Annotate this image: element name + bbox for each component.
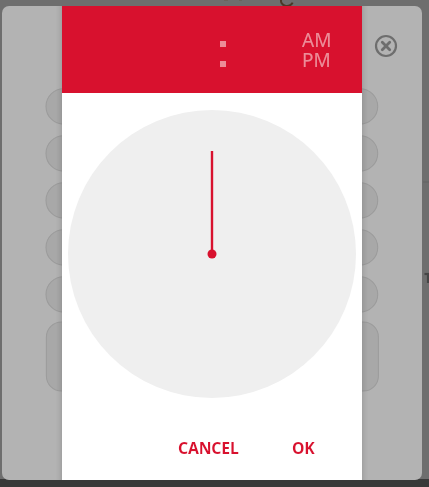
staticText: PM [302, 47, 331, 71]
staticText: OK [292, 437, 315, 459]
button[interactable]: OK [292, 431, 315, 465]
button[interactable]: CANCEL [178, 431, 239, 465]
button[interactable]: Close [374, 34, 398, 58]
staticText: CANCEL [178, 437, 239, 459]
button[interactable]: PM [302, 47, 338, 71]
staticText: AM [302, 27, 332, 51]
button[interactable]: AM [302, 27, 338, 51]
